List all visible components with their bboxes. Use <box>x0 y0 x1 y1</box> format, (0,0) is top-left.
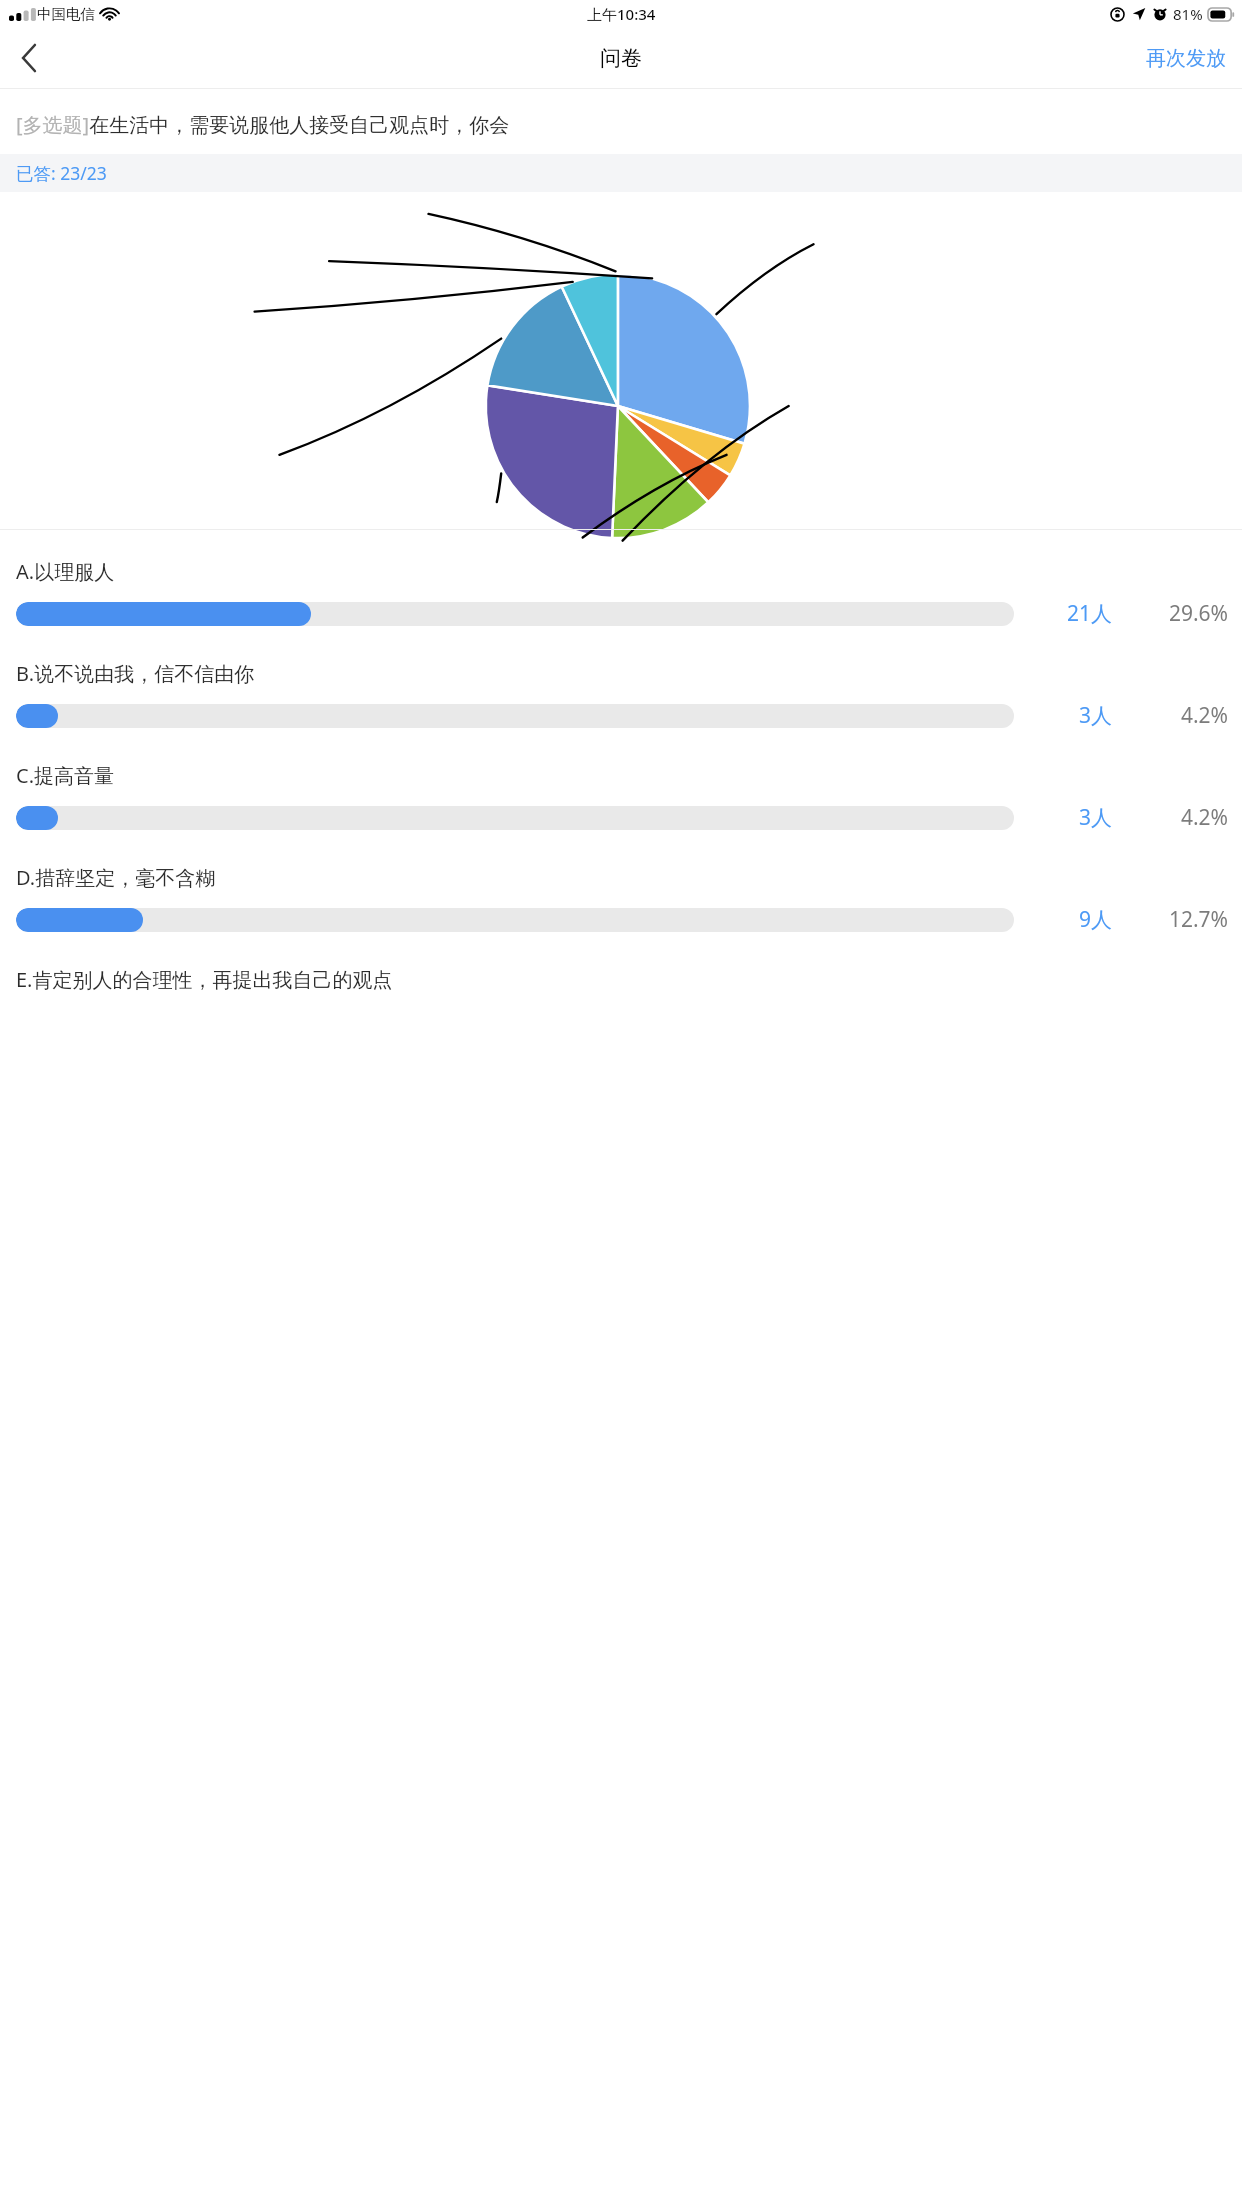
staticText: 9人 <box>1026 905 1112 934</box>
button[interactable]: 再次发放 <box>1130 36 1242 81</box>
staticText: C.提高音量 <box>16 762 114 789</box>
staticText: E.肯定别人的合理性，再提出我自己的观点 <box>16 966 393 993</box>
staticText: B.说不说由我，信不信由你 <box>16 660 255 687</box>
staticText: 3人 <box>1026 701 1112 730</box>
button[interactable]: 返回 <box>0 29 58 87</box>
staticText: D.措辞坚定，毫不含糊 <box>16 864 216 891</box>
staticText: 21人 <box>1026 599 1112 628</box>
staticText: 4.2% <box>1122 701 1228 730</box>
staticText: 已答: 23/23 <box>16 161 107 185</box>
staticText: 3人 <box>1026 803 1112 832</box>
staticText: 再次发放 <box>1146 46 1226 71</box>
staticText: 中国电信 <box>37 5 95 23</box>
button[interactable]: D.措辞坚定，毫不含糊 <box>0 864 1242 966</box>
button[interactable]: A.以理服人 <box>0 558 1242 660</box>
button[interactable]: B.说不说由我，信不信由你 <box>0 660 1242 762</box>
staticText: 4.2% <box>1122 803 1228 832</box>
staticText: [多选题]在生活中，需要说服他人接受自己观点时，你会 <box>16 111 510 138</box>
staticText: 上午10:34 <box>587 4 656 24</box>
button[interactable]: C.提高音量 <box>0 762 1242 864</box>
staticText: 12.7% <box>1122 905 1228 934</box>
staticText: 问卷 <box>600 45 642 71</box>
staticText: A.以理服人 <box>16 558 115 585</box>
staticText: 81% <box>1173 4 1203 24</box>
staticText: 29.6% <box>1122 599 1228 628</box>
